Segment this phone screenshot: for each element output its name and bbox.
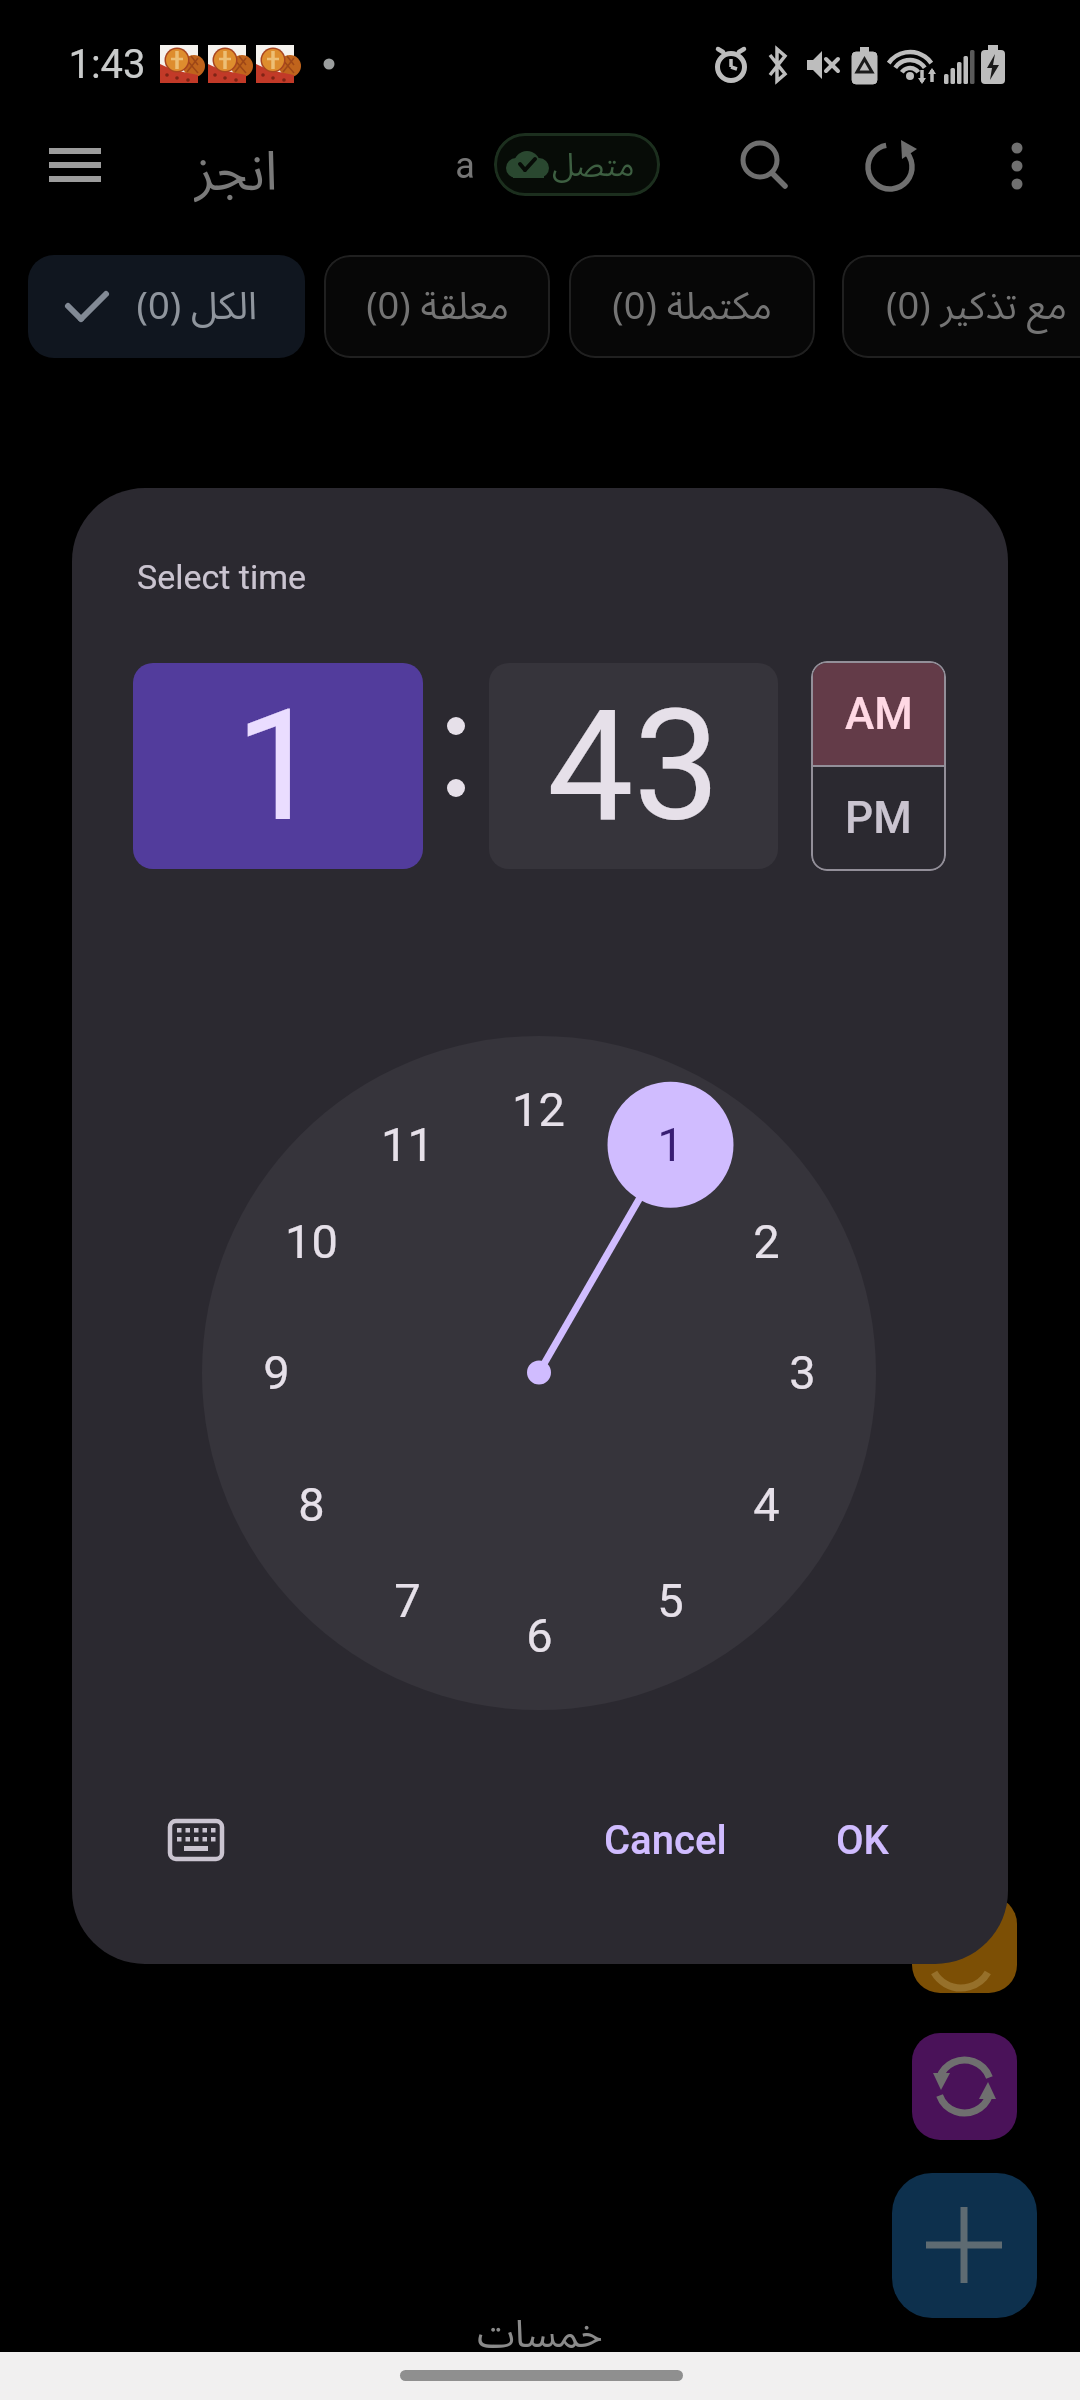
button[interactable] (912, 2033, 1017, 2140)
staticText: انجز (194, 116, 278, 204)
button[interactable]: Cancel (580, 1805, 750, 1875)
staticText: 1 (657, 1117, 684, 1172)
staticText: Select time (137, 557, 307, 597)
button[interactable] (40, 136, 110, 196)
staticText: 10 (285, 1214, 338, 1269)
staticText: AM (845, 688, 913, 740)
button[interactable]: متصل (494, 133, 660, 196)
staticText: 5 (657, 1573, 684, 1628)
staticText: 1:43 (68, 41, 146, 87)
button[interactable] (860, 136, 922, 198)
button[interactable]: معلقة (0) (324, 255, 550, 358)
button[interactable]: الكل (0) (28, 255, 305, 358)
button[interactable]: AM (813, 663, 944, 765)
staticText: 9 (263, 1345, 290, 1400)
button[interactable] (992, 136, 1042, 198)
staticText: a (455, 145, 475, 187)
button[interactable] (892, 2173, 1037, 2318)
staticText: معلقة (0) (366, 267, 509, 347)
staticText: الكل (0) (136, 267, 257, 347)
staticText: 6 (526, 1608, 553, 1663)
button[interactable] (150, 1800, 250, 1880)
button[interactable]: 43 (489, 663, 778, 869)
staticText: مكتملة (0) (612, 267, 772, 347)
staticText: مع تذكير (0) (886, 267, 1067, 347)
staticText: 2 (753, 1214, 780, 1269)
staticText: OK (836, 1817, 889, 1864)
staticText: 1 (235, 676, 322, 856)
button[interactable] (912, 1896, 1017, 1993)
button[interactable]: PM (813, 767, 944, 869)
staticText: 3 (789, 1345, 816, 1400)
staticText: خمسات (477, 2295, 603, 2355)
button[interactable]: OK (800, 1805, 925, 1875)
button[interactable]: مع تذكير (0) (842, 255, 1080, 358)
staticText: 12 (512, 1082, 565, 1137)
staticText: PM (845, 792, 912, 844)
staticText: متصل (552, 133, 635, 195)
button[interactable] (730, 136, 794, 198)
staticText: 4 (753, 1477, 780, 1532)
staticText: 8 (298, 1477, 325, 1532)
staticText: 43 (547, 676, 721, 856)
button[interactable]: مكتملة (0) (569, 255, 815, 358)
staticText: 11 (381, 1117, 434, 1172)
button[interactable]: 1 (133, 663, 423, 869)
staticText: Cancel (604, 1817, 727, 1864)
staticText: 7 (394, 1573, 421, 1628)
